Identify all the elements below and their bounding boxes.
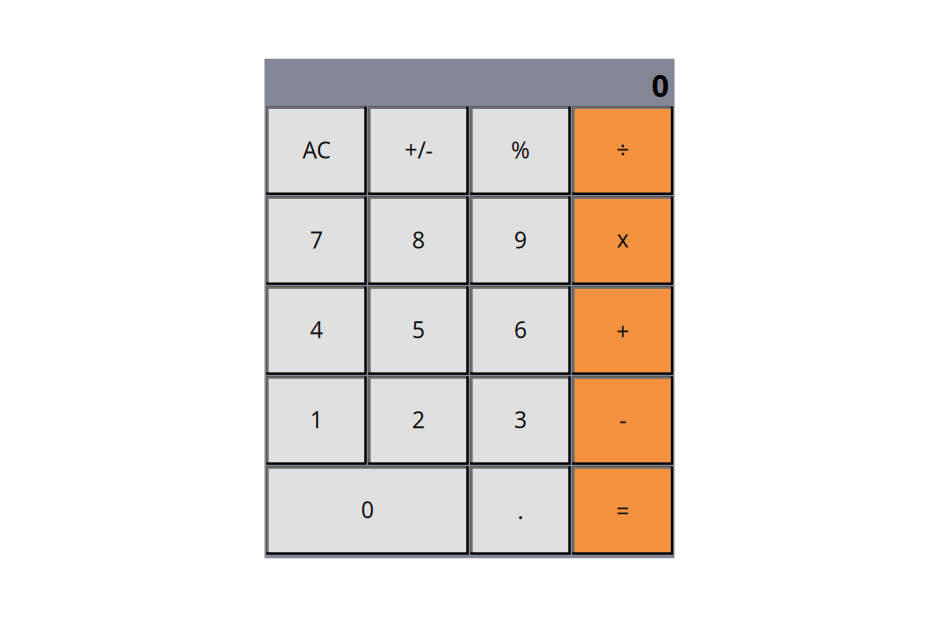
staticText: 0 — [651, 65, 669, 105]
button[interactable]: 5 — [368, 286, 469, 375]
button[interactable]: 0 — [266, 466, 469, 555]
button[interactable]: 9 — [470, 196, 571, 285]
staticText: x — [617, 224, 629, 254]
button[interactable]: Minus — [572, 376, 673, 465]
staticText: 8 — [412, 225, 425, 255]
button[interactable]: 8 — [368, 196, 469, 285]
staticText: 4 — [310, 314, 323, 345]
staticText: ÷ — [616, 135, 629, 165]
button[interactable]: 3 — [470, 376, 571, 465]
staticText: + — [616, 316, 629, 347]
button[interactable]: All clear — [266, 106, 367, 195]
staticText: 2 — [412, 404, 425, 435]
button[interactable]: Plus minus — [368, 106, 469, 195]
staticText: - — [619, 404, 626, 435]
staticText: 0 — [361, 494, 374, 524]
staticText: 3 — [514, 404, 527, 435]
button[interactable]: 1 — [266, 376, 367, 465]
staticText: 9 — [514, 225, 527, 255]
button[interactable]: 2 — [368, 376, 469, 465]
staticText: AC — [302, 135, 330, 165]
staticText: = — [616, 495, 629, 525]
button[interactable]: Decimal point — [470, 466, 571, 555]
button[interactable]: Multiply — [572, 196, 673, 285]
button[interactable]: Equals — [572, 466, 673, 555]
button[interactable]: 6 — [470, 286, 571, 375]
button[interactable]: Plus — [572, 286, 673, 375]
button[interactable]: 4 — [266, 286, 367, 375]
staticText: 6 — [514, 314, 527, 345]
staticText: 1 — [310, 404, 323, 435]
staticText: 7 — [310, 225, 323, 255]
staticText: % — [511, 135, 530, 165]
button[interactable]: Percent — [470, 106, 571, 195]
staticText: . — [517, 495, 523, 525]
button[interactable]: 7 — [266, 196, 367, 285]
staticText: 5 — [412, 314, 425, 345]
staticText: +/- — [404, 135, 432, 165]
button[interactable]: Divide — [572, 106, 673, 195]
